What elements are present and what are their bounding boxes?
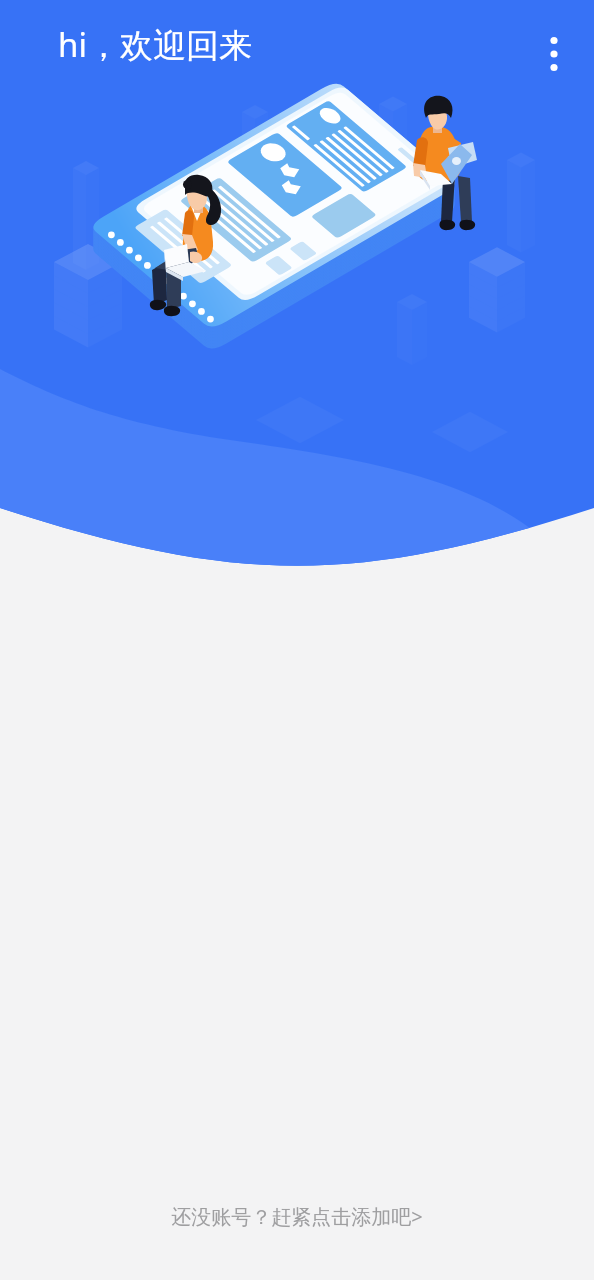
staticText: 还没账号？赶紧点击添加吧>	[171, 1203, 423, 1230]
button[interactable]: 还没账号？赶紧点击添加吧>	[155, 1195, 439, 1238]
staticText: hi，欢迎回来	[58, 22, 252, 67]
button[interactable]: More options	[536, 36, 572, 72]
